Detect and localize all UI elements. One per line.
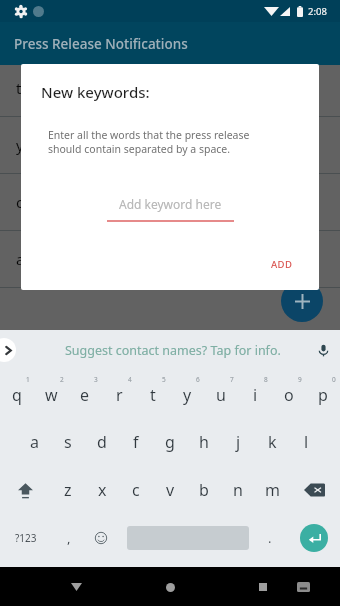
button[interactable]: r	[102, 370, 136, 418]
staticText: ,	[67, 529, 71, 547]
staticText: f	[133, 431, 139, 453]
button[interactable]: s	[51, 418, 85, 466]
button[interactable]: v	[153, 466, 187, 514]
staticText: r	[116, 384, 123, 406]
button[interactable]: j	[221, 418, 255, 466]
button[interactable]: yahoo	[0, 117, 340, 173]
staticText: 8	[264, 375, 268, 384]
staticText: j	[236, 431, 241, 453]
staticText: Press Release Notifications	[14, 35, 188, 53]
button[interactable]: Emoji	[85, 514, 117, 562]
staticText: c	[132, 479, 140, 501]
staticText: Add keyword here	[119, 196, 222, 212]
staticText: 6	[196, 375, 200, 384]
button[interactable]: ADD	[259, 250, 305, 279]
button[interactable]: Expand suggestions	[0, 338, 16, 362]
button[interactable]: f	[119, 418, 153, 466]
button[interactable]: d	[85, 418, 119, 466]
staticText: 2:08	[308, 5, 327, 18]
staticText: v	[166, 479, 175, 501]
staticText: b	[199, 479, 209, 501]
staticText: u	[216, 384, 226, 406]
button[interactable]: h	[187, 418, 221, 466]
button[interactable]: a	[17, 418, 51, 466]
staticText: yahoo	[16, 135, 60, 155]
button[interactable]: e	[68, 370, 102, 418]
button[interactable]: cisco	[0, 174, 340, 230]
staticText: z	[64, 479, 72, 501]
button[interactable]: y	[170, 370, 204, 418]
staticText: 1	[26, 375, 30, 384]
staticText: 3	[94, 375, 98, 384]
staticText: e	[80, 384, 90, 406]
staticText: 4	[128, 375, 132, 384]
staticText: h	[199, 431, 209, 453]
button[interactable]: Voice input	[312, 339, 334, 361]
button[interactable]: Recent apps	[248, 572, 278, 602]
button[interactable]: .	[249, 514, 291, 562]
button[interactable]: Delete	[289, 466, 340, 514]
staticText: 5	[162, 375, 166, 384]
staticText: o	[284, 384, 294, 406]
button[interactable]: Add	[281, 280, 323, 322]
staticText: p	[318, 384, 328, 406]
staticText: w	[45, 384, 58, 406]
button[interactable]: Back	[61, 572, 91, 602]
button[interactable]: b	[187, 466, 221, 514]
staticText: t	[150, 384, 156, 406]
staticText: a	[30, 431, 39, 453]
staticText: n	[233, 479, 243, 501]
button[interactable]: g	[153, 418, 187, 466]
button[interactable]: l	[289, 418, 323, 466]
button[interactable]: Shift	[0, 466, 51, 514]
staticText: apple	[16, 249, 56, 269]
button[interactable]: n	[221, 466, 255, 514]
staticText: g	[165, 431, 175, 453]
button[interactable]: Home	[155, 572, 185, 602]
button[interactable]: Add keyword here	[107, 196, 234, 222]
button[interactable]: Switch keyboard	[288, 572, 318, 602]
staticText: ADD	[271, 258, 293, 271]
staticText: New keywords:	[41, 82, 150, 102]
staticText: .	[268, 529, 272, 547]
button[interactable]: o	[272, 370, 306, 418]
staticText: m	[265, 479, 280, 501]
staticText: l	[304, 431, 309, 453]
staticText: s	[64, 431, 72, 453]
staticText: 0	[332, 375, 336, 384]
staticText: tesla	[16, 78, 50, 98]
button[interactable]: z	[51, 466, 85, 514]
staticText: k	[268, 431, 277, 453]
button[interactable]: tesla	[0, 60, 340, 116]
button[interactable]: p	[306, 370, 340, 418]
button[interactable]: k	[255, 418, 289, 466]
button[interactable]: apple	[0, 231, 340, 287]
staticText: d	[97, 431, 107, 453]
staticText: x	[98, 479, 107, 501]
staticText: q	[12, 384, 22, 406]
staticText: i	[253, 384, 258, 406]
staticText: Enter all the words that the press relea…	[48, 128, 250, 156]
staticText: y	[183, 384, 192, 406]
button[interactable]: q	[0, 370, 34, 418]
button[interactable]: w	[34, 370, 68, 418]
button[interactable]: Enter	[300, 524, 328, 552]
staticText: 9	[298, 375, 302, 384]
button[interactable]: t	[136, 370, 170, 418]
button[interactable]: ,	[52, 514, 85, 562]
staticText: 2	[60, 375, 64, 384]
staticText: ?123	[15, 531, 37, 545]
staticText: cisco	[16, 192, 51, 212]
button[interactable]: m	[255, 466, 289, 514]
button[interactable]: x	[85, 466, 119, 514]
button[interactable]: ?123	[0, 514, 52, 562]
button[interactable]: i	[238, 370, 272, 418]
button[interactable]: c	[119, 466, 153, 514]
button[interactable]: Suggest contact names? Tap for info.	[65, 342, 281, 359]
staticText: 7	[230, 375, 234, 384]
button[interactable]: u	[204, 370, 238, 418]
